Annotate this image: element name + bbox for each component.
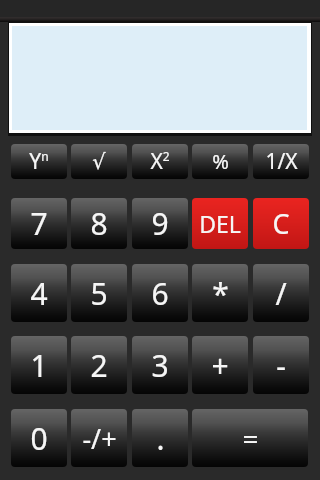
staticText: 0 [30, 418, 48, 459]
button[interactable]: 2 [71, 336, 127, 394]
button[interactable]: . [132, 409, 188, 467]
button[interactable]: + [192, 336, 248, 394]
staticText: 3 [151, 345, 169, 386]
staticText: 1 [30, 345, 48, 386]
button[interactable]: 8 [71, 198, 127, 249]
button[interactable]: 3 [132, 336, 188, 394]
staticText: - [276, 345, 286, 386]
staticText: + [211, 345, 229, 386]
button[interactable]: DEL [192, 198, 248, 249]
staticText: 7 [30, 203, 48, 244]
staticText: 9 [151, 203, 169, 244]
button[interactable]: 5 [71, 264, 127, 322]
button[interactable]: 9 [132, 198, 188, 249]
staticText: 4 [30, 273, 48, 314]
staticText: Yn [29, 147, 49, 176]
staticText: X2 [150, 147, 170, 176]
button[interactable]: / [253, 264, 309, 322]
staticText: DEL [199, 208, 241, 239]
button[interactable]: 7 [11, 198, 67, 249]
staticText: 5 [90, 273, 108, 314]
button[interactable]: 4 [11, 264, 67, 322]
staticText: C [272, 205, 290, 242]
button[interactable]: % [192, 144, 248, 179]
button[interactable]: -/+ [71, 409, 127, 467]
button[interactable]: 1 [11, 336, 67, 394]
button[interactable]: Yn [11, 144, 67, 179]
staticText: / [275, 273, 287, 314]
staticText: = [242, 419, 259, 457]
button[interactable]: √ [71, 144, 127, 179]
button[interactable]: = [192, 409, 308, 467]
staticText: % [212, 148, 229, 175]
staticText: . [156, 418, 165, 459]
button[interactable]: 1/X [253, 144, 309, 179]
button[interactable]: - [253, 336, 309, 394]
button[interactable]: 0 [11, 409, 67, 467]
button[interactable]: 6 [132, 264, 188, 322]
button[interactable]: X2 [132, 144, 188, 179]
staticText: 6 [151, 273, 169, 314]
button[interactable]: * [192, 264, 248, 322]
staticText: * [212, 273, 229, 314]
staticText: √ [92, 150, 106, 174]
staticText: 1/X [265, 147, 298, 176]
button[interactable]: C [253, 198, 309, 249]
staticText: 2 [90, 345, 108, 386]
staticText: 8 [90, 203, 108, 244]
staticText: -/+ [82, 420, 117, 457]
